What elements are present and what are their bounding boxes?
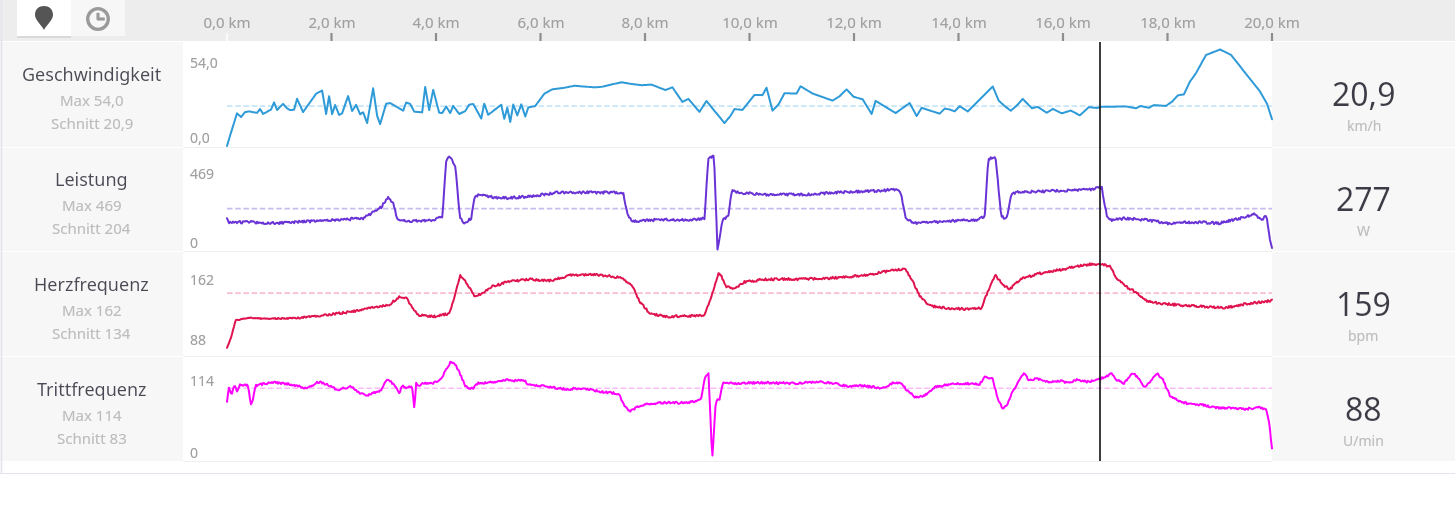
- staticText: km/h: [1347, 116, 1382, 135]
- staticText: Max 469: [62, 195, 122, 215]
- staticText: 20,9: [1332, 72, 1396, 116]
- button[interactable]: Herzfrequenz: [0, 252, 183, 356]
- staticText: 162: [190, 270, 215, 289]
- button[interactable]: Trittfrequenz: [0, 357, 183, 461]
- staticText: W: [1357, 221, 1371, 240]
- staticText: U/min: [1343, 431, 1384, 450]
- staticText: 2,0 km: [272, 12, 392, 32]
- staticText: Leistung: [55, 167, 128, 192]
- staticText: 0,0 km: [167, 12, 287, 32]
- button[interactable]: 159: [1272, 252, 1455, 356]
- staticText: 18,0 km: [1108, 12, 1228, 32]
- button[interactable]: Geschwindigkeit: [0, 42, 183, 147]
- button[interactable]: 277: [1272, 148, 1455, 251]
- staticText: 54,0: [190, 53, 218, 72]
- staticText: Max 114: [62, 405, 122, 425]
- staticText: Max 54,0: [60, 90, 124, 110]
- button[interactable]: 20,9: [1272, 42, 1455, 147]
- staticText: 16,0 km: [1003, 12, 1123, 32]
- staticText: bpm: [1348, 326, 1379, 345]
- staticText: 0,0: [190, 128, 210, 147]
- staticText: 88: [190, 330, 207, 349]
- staticText: Herzfrequenz: [34, 272, 149, 297]
- staticText: Schnitt 204: [52, 218, 131, 238]
- button[interactable]: 88: [1272, 357, 1455, 461]
- staticText: 12,0 km: [794, 12, 914, 32]
- staticText: 114: [190, 371, 215, 390]
- staticText: 10,0 km: [690, 12, 810, 32]
- staticText: Geschwindigkeit: [22, 62, 162, 87]
- button[interactable]: Time: [71, 0, 125, 38]
- staticText: 20,0 km: [1212, 12, 1332, 32]
- staticText: 0: [190, 443, 199, 462]
- staticText: 277: [1336, 177, 1391, 221]
- staticText: 0: [190, 233, 199, 252]
- staticText: Schnitt 83: [57, 428, 127, 448]
- staticText: 469: [190, 164, 215, 183]
- staticText: Trittfrequenz: [37, 377, 147, 402]
- staticText: Schnitt 20,9: [51, 113, 134, 133]
- staticText: 4,0 km: [376, 12, 496, 32]
- staticText: 14,0 km: [899, 12, 1019, 32]
- staticText: 8,0 km: [585, 12, 705, 32]
- button[interactable]: Leistung: [0, 148, 183, 251]
- staticText: Schnitt 134: [52, 323, 131, 343]
- staticText: 159: [1336, 282, 1391, 326]
- button[interactable]: Map: [17, 0, 71, 38]
- staticText: 6,0 km: [481, 12, 601, 32]
- staticText: 88: [1345, 387, 1382, 431]
- staticText: Max 162: [62, 300, 122, 320]
